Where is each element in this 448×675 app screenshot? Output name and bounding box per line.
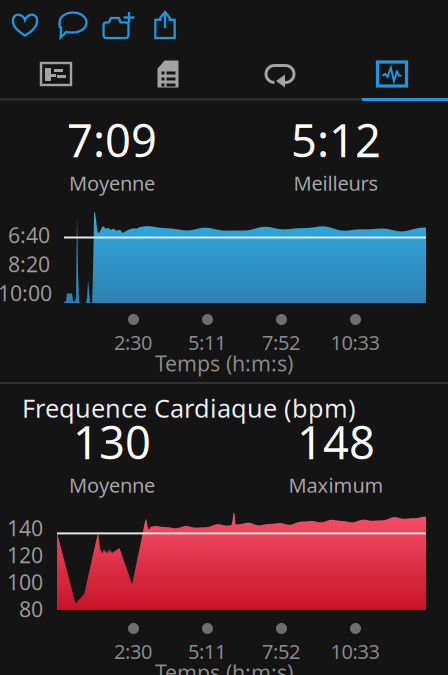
staticText: 130 bbox=[73, 412, 151, 472]
staticText: 10:33 bbox=[330, 329, 379, 356]
button[interactable]: Add photo bbox=[96, 0, 142, 50]
staticText: 10:33 bbox=[330, 638, 379, 665]
staticText: 140 bbox=[7, 514, 43, 542]
staticText: 100 bbox=[7, 568, 43, 596]
staticText: 7:52 bbox=[262, 638, 300, 665]
staticText: 2:30 bbox=[114, 638, 152, 665]
staticText: Moyenne bbox=[69, 472, 155, 498]
staticText: Frequence Cardiaque (bpm) bbox=[22, 391, 356, 425]
staticText: 5:12 bbox=[291, 110, 381, 170]
button[interactable]: Share bbox=[142, 0, 188, 50]
staticText: 8:20 bbox=[8, 250, 50, 278]
staticText: 148 bbox=[297, 412, 375, 472]
staticText: 5:11 bbox=[188, 329, 226, 356]
staticText: 6:40 bbox=[8, 221, 50, 249]
button[interactable]: Laps bbox=[224, 50, 336, 98]
staticText: 80 bbox=[19, 595, 43, 623]
button[interactable]: Graphs bbox=[336, 50, 448, 98]
staticText: 7:52 bbox=[262, 329, 300, 356]
button[interactable]: Map bbox=[0, 50, 112, 98]
staticText: Temps (h:m:s) bbox=[155, 349, 293, 377]
staticText: 2:30 bbox=[114, 329, 152, 356]
staticText: Meilleurs bbox=[293, 170, 378, 196]
staticText: Temps (h:m:s) bbox=[155, 658, 293, 675]
button[interactable]: Details bbox=[112, 50, 224, 98]
staticText: 10:00 bbox=[0, 279, 52, 307]
staticText: 120 bbox=[7, 541, 43, 569]
button[interactable]: Like bbox=[0, 0, 50, 50]
staticText: Maximum bbox=[288, 472, 383, 498]
staticText: 7:09 bbox=[67, 110, 157, 170]
staticText: 5:11 bbox=[188, 638, 226, 665]
staticText: Moyenne bbox=[69, 170, 155, 196]
button[interactable]: Comment bbox=[50, 0, 96, 50]
